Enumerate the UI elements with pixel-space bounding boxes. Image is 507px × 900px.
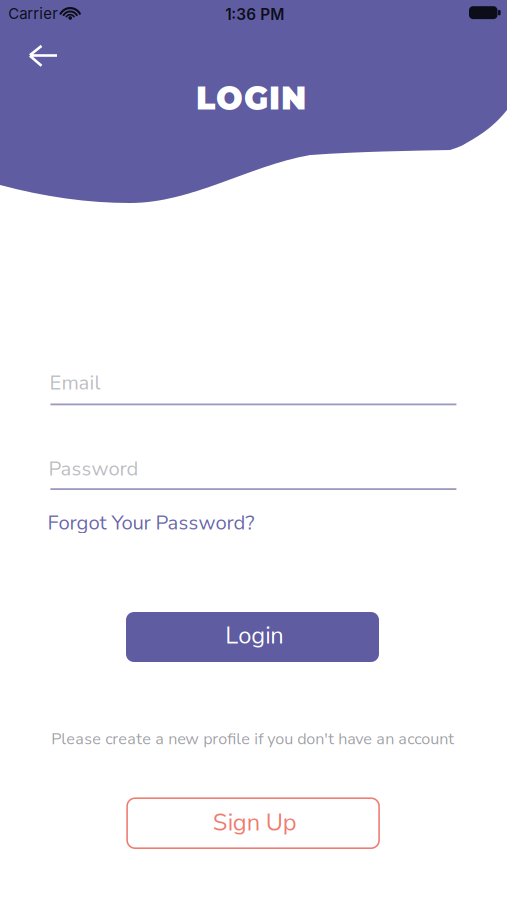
staticText: Sign Up <box>213 807 297 839</box>
button[interactable]: Email <box>50 369 456 405</box>
staticText: Carrier <box>8 4 58 23</box>
staticText: Please create a new profile if you don't… <box>51 728 454 750</box>
staticText: Forgot Your Password? <box>48 509 255 537</box>
staticText: Password <box>48 455 138 483</box>
staticText: 1:36 PM <box>225 5 284 24</box>
staticText: Login <box>225 620 283 652</box>
button[interactable] <box>0 0 75 85</box>
staticText: LOGIN <box>196 79 306 117</box>
button[interactable]: Login <box>126 612 379 662</box>
button[interactable]: Forgot Your Password? <box>48 509 255 537</box>
button[interactable]: Password <box>50 455 456 490</box>
staticText: Email <box>49 369 100 397</box>
button[interactable]: Sign Up <box>127 798 379 848</box>
